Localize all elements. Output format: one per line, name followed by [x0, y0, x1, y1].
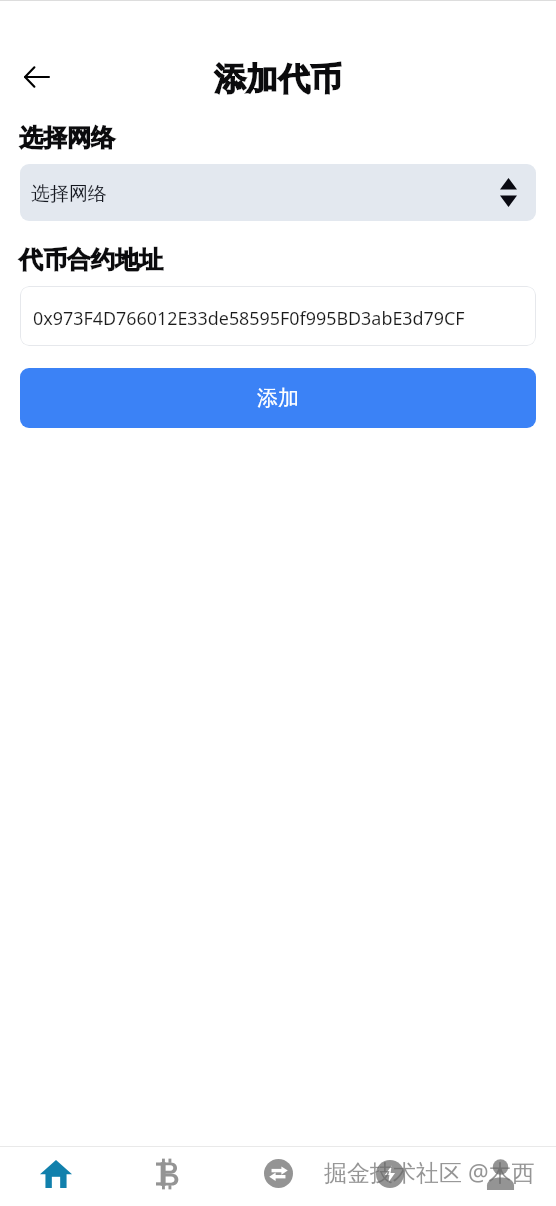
staticText: 添加代币	[214, 59, 342, 99]
button[interactable]: Back	[11, 51, 63, 103]
staticText: 选择网络	[19, 123, 115, 153]
button[interactable]: Home	[0, 1147, 112, 1206]
staticText: 掘金技术社区 @木西	[324, 1156, 535, 1187]
button[interactable]: 0x973F4D766012E33de58595F0f995BD3abE3d79…	[20, 286, 536, 346]
button[interactable]: Swap	[223, 1147, 334, 1206]
staticText: 代币合约地址	[19, 245, 163, 275]
button[interactable]: 添加	[20, 368, 536, 428]
button[interactable]: 选择网络	[20, 164, 536, 221]
button[interactable]: Account	[445, 1147, 556, 1206]
staticText: 选择网络	[31, 182, 107, 206]
button[interactable]: Tokens	[112, 1147, 223, 1206]
button[interactable]: Discover	[334, 1147, 445, 1206]
staticText: 0x973F4D766012E33de58595F0f995BD3abE3d79…	[33, 306, 465, 330]
staticText: 添加	[257, 385, 299, 411]
